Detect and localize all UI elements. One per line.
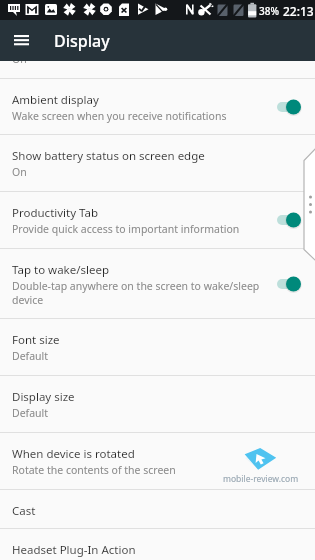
staticText: Display (54, 30, 110, 52)
staticText: Wake screen when you receive notificatio… (12, 109, 227, 123)
button[interactable]: Show battery status on screen edge (0, 135, 315, 191)
staticText: Double-tap anywhere on the screen to wak… (12, 279, 264, 307)
staticText: Show battery status on screen edge (12, 148, 205, 164)
staticText: Display size (12, 389, 75, 405)
staticText: Tap to wake/sleep (12, 262, 110, 278)
button[interactable]: Tap to wake/sleep (0, 249, 315, 318)
staticText: Headset Plug-In Action (12, 542, 136, 558)
button[interactable]: Open navigation drawer (6, 21, 37, 61)
button[interactable]: Cast (0, 490, 315, 528)
staticText: 22:13 (283, 3, 314, 19)
staticText: Font size (12, 332, 60, 348)
staticText: mobile-review.com (223, 473, 299, 485)
staticText: When device is rotated (12, 446, 135, 462)
staticText: Cast (12, 503, 36, 519)
staticText: Default (12, 349, 49, 363)
button[interactable]: Productivity Tab switch (273, 205, 305, 235)
button[interactable]: Font size (0, 319, 315, 375)
button[interactable]: When device is rotated (0, 433, 315, 489)
staticText: On (12, 52, 27, 66)
button[interactable]: Ambient display (0, 79, 315, 134)
staticText: Provide quick access to important inform… (12, 222, 240, 236)
button[interactable]: Headset Plug-In Action (0, 529, 315, 560)
button[interactable]: Productivity Tab (0, 192, 315, 248)
button[interactable]: Ambient display switch (273, 92, 305, 122)
button[interactable]: Display size (0, 376, 315, 432)
staticText: Default (12, 406, 49, 420)
staticText: Ambient display (12, 92, 99, 108)
staticText: On (12, 165, 27, 179)
staticText: 38% (259, 4, 279, 18)
button[interactable]: Tap to wake/sleep switch (273, 269, 305, 299)
staticText: Rotate the contents of the screen (12, 463, 176, 477)
staticText: Productivity Tab (12, 205, 99, 221)
